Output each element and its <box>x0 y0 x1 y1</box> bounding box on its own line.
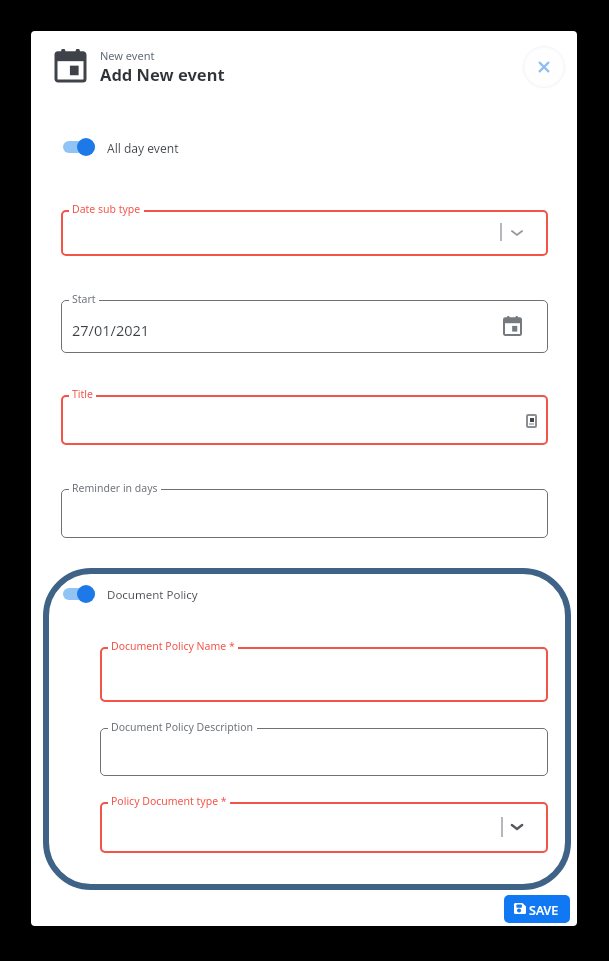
staticText: New event <box>100 48 155 63</box>
button[interactable] <box>522 45 566 89</box>
staticText: SAVE <box>529 902 559 919</box>
staticText: 27/01/2021 <box>72 320 150 340</box>
staticText: Policy Document type * <box>111 794 227 808</box>
button[interactable] <box>61 489 548 538</box>
button[interactable] <box>61 300 548 353</box>
staticText: Document Policy Description <box>111 720 254 734</box>
button[interactable] <box>61 210 548 256</box>
staticText: All day event <box>107 140 179 156</box>
button[interactable] <box>100 728 548 776</box>
button[interactable] <box>63 588 95 600</box>
button[interactable] <box>61 395 548 445</box>
button[interactable] <box>100 647 548 702</box>
staticText: Start <box>72 292 96 306</box>
button[interactable]: SAVE <box>504 895 570 923</box>
staticText: Title <box>72 387 93 401</box>
staticText: Document Policy Name * <box>111 639 235 653</box>
staticText: Add New event <box>100 63 225 85</box>
staticText: Reminder in days <box>72 481 158 495</box>
button[interactable] <box>63 141 95 153</box>
staticText: Date sub type <box>72 202 141 216</box>
staticText: Document Policy <box>107 587 198 603</box>
button[interactable] <box>100 802 548 853</box>
